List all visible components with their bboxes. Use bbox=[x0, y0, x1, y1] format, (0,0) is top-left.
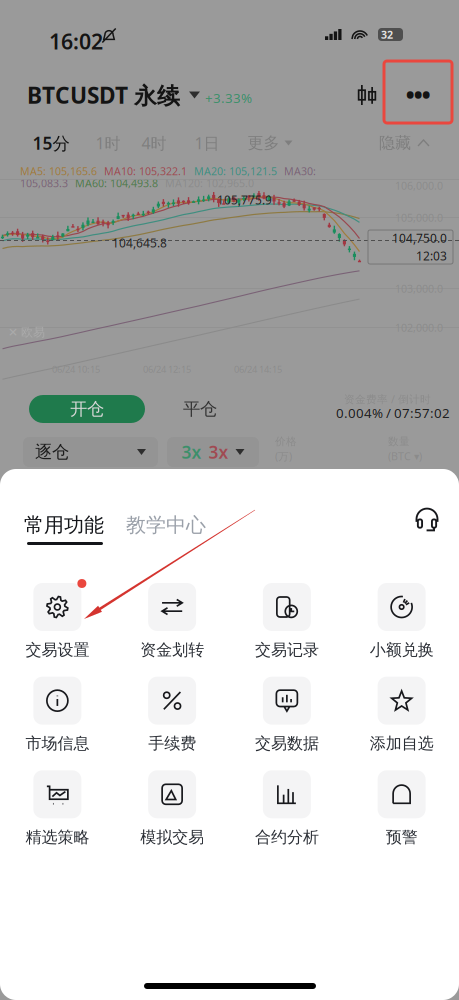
button[interactable]: 客服 bbox=[407, 500, 447, 540]
staticText: 3x bbox=[181, 440, 201, 463]
staticText: 教学中心 bbox=[126, 513, 206, 537]
staticText: MA60: 104,493.8 bbox=[75, 176, 158, 190]
button[interactable]: 平仓 bbox=[142, 395, 258, 423]
staticText: 1时 bbox=[95, 132, 120, 154]
staticText: 价格 bbox=[275, 435, 297, 448]
staticText: 06/24 14:15 bbox=[234, 363, 282, 375]
staticText: 102,000.0 bbox=[395, 320, 443, 335]
button[interactable]: 资金划转 bbox=[115, 583, 230, 660]
staticText: 欧易 bbox=[21, 325, 45, 340]
button[interactable]: 更多 bbox=[244, 130, 296, 156]
staticText: 106,000.0 bbox=[395, 178, 443, 193]
button[interactable]: 1时 bbox=[89, 130, 127, 156]
staticText: +3.33% bbox=[205, 89, 252, 107]
button[interactable]: 隐藏 bbox=[375, 130, 433, 156]
button[interactable]: 交易设置 bbox=[0, 583, 115, 660]
button[interactable]: 手续费 bbox=[115, 677, 230, 753]
staticText: 105,000.0 bbox=[395, 210, 443, 225]
staticText: 更多 bbox=[247, 133, 279, 153]
button[interactable]: 精选策略 bbox=[0, 770, 115, 847]
staticText: 逐仓 bbox=[35, 441, 69, 463]
staticText: 资金费率 / 倒计时 bbox=[344, 392, 431, 406]
staticText: MA10: 105,322.1 bbox=[104, 164, 187, 178]
staticText: 交易数据 bbox=[255, 734, 319, 753]
staticText: BTCUSDT 永续 bbox=[27, 80, 180, 110]
staticText: 交易设置 bbox=[25, 640, 89, 660]
button[interactable]: 15分 bbox=[27, 130, 75, 156]
staticText: MA5: 105,165.6 bbox=[20, 164, 97, 178]
staticText: 小额兑换 bbox=[370, 640, 434, 660]
staticText: MA120: 102,965.0 bbox=[165, 176, 254, 190]
staticText: MA30: bbox=[284, 164, 316, 178]
staticText: 市场信息 bbox=[25, 734, 89, 753]
staticText: 开仓 bbox=[70, 398, 104, 420]
staticText: 1日 bbox=[194, 132, 219, 154]
staticText: 105,775.9 bbox=[217, 192, 272, 208]
button[interactable]: 常用功能 bbox=[24, 510, 104, 540]
staticText: 06/24 10:15 bbox=[52, 363, 100, 375]
staticText: 12:03 bbox=[416, 248, 447, 264]
staticText: 精选策略 bbox=[25, 827, 89, 847]
staticText: 32 bbox=[381, 27, 393, 42]
staticText: 3x bbox=[208, 440, 228, 463]
staticText: 平仓 bbox=[183, 398, 217, 420]
staticText: 模拟交易 bbox=[140, 827, 204, 847]
staticText: 0.004% / 07:57:02 bbox=[336, 404, 450, 422]
button[interactable]: 开仓 bbox=[29, 395, 145, 423]
staticText: 常用功能 bbox=[24, 513, 104, 537]
staticText: 15分 bbox=[32, 131, 69, 154]
staticText: 104,645.8 bbox=[112, 235, 167, 251]
button[interactable]: 3x bbox=[167, 437, 259, 467]
button[interactable]: 交易记录 bbox=[229, 583, 344, 660]
button[interactable]: 指标 bbox=[347, 75, 387, 115]
button[interactable]: 模拟交易 bbox=[115, 770, 230, 847]
staticText: 06/24 12:15 bbox=[143, 363, 191, 375]
staticText: 交易记录 bbox=[255, 640, 319, 660]
button[interactable]: 1日 bbox=[188, 130, 226, 156]
staticText: 104,750.0 bbox=[392, 230, 447, 246]
staticText: 隐藏 bbox=[379, 133, 411, 153]
button[interactable]: 市场信息 bbox=[0, 677, 115, 753]
staticText: 合约分析 bbox=[255, 827, 319, 847]
staticText: 4时 bbox=[141, 132, 166, 154]
button[interactable]: 小额兑换 bbox=[344, 583, 459, 660]
staticText: 资金划转 bbox=[140, 640, 204, 660]
button[interactable]: 合约分析 bbox=[229, 770, 344, 847]
staticText: ••• bbox=[406, 81, 430, 109]
button[interactable]: 更多 bbox=[390, 70, 446, 120]
button[interactable]: 教学中心 bbox=[124, 510, 208, 540]
button[interactable]: 交易数据 bbox=[229, 677, 344, 753]
button[interactable]: 4时 bbox=[135, 130, 173, 156]
staticText: MA20: 105,121.5 bbox=[194, 164, 277, 178]
staticText: 预警 bbox=[386, 827, 418, 847]
staticText: ✕ bbox=[8, 326, 18, 339]
button[interactable]: BTCUSDT 永续 bbox=[27, 78, 200, 112]
staticText: 105,083.3 bbox=[20, 176, 68, 190]
button[interactable]: 添加自选 bbox=[344, 677, 459, 753]
staticText: 16:02 bbox=[49, 27, 103, 55]
staticText: (BTC ▾) bbox=[388, 449, 422, 463]
staticText: (万) bbox=[275, 449, 292, 463]
button[interactable]: 预警 bbox=[344, 770, 459, 847]
staticText: 手续费 bbox=[148, 734, 196, 753]
staticText: 数量 bbox=[388, 435, 410, 448]
staticText: 103,000.0 bbox=[395, 281, 443, 296]
button[interactable]: 逐仓 bbox=[23, 437, 158, 467]
staticText: 添加自选 bbox=[370, 734, 434, 753]
